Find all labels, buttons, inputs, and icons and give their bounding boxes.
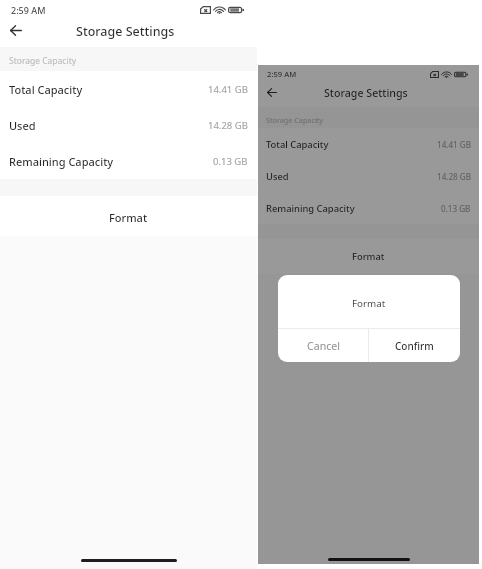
staticText: 0.13 GB: [213, 155, 248, 168]
staticText: Total Capacity: [9, 82, 83, 97]
staticText: 0.13 GB: [441, 203, 471, 214]
staticText: Remaining Capacity: [9, 154, 114, 169]
staticText: 14.28 GB: [208, 119, 248, 132]
button[interactable]: Cancel: [278, 329, 368, 362]
staticText: 14.41 GB: [437, 139, 471, 150]
staticText: Cancel: [307, 339, 340, 353]
staticText: Storage Settings: [324, 86, 408, 101]
button[interactable]: Total Capacity: [0, 71, 257, 107]
staticText: Confirm: [395, 339, 434, 353]
button[interactable]: Remaining Capacity: [0, 143, 257, 179]
button[interactable]: Total Capacity: [258, 128, 479, 160]
staticText: Format: [352, 250, 385, 263]
staticText: 2:59 AM: [267, 69, 297, 79]
button[interactable]: Back: [260, 85, 284, 100]
staticText: Format: [109, 210, 148, 225]
button[interactable]: Used: [0, 107, 257, 143]
button[interactable]: Used: [258, 160, 479, 192]
staticText: Remaining Capacity: [266, 202, 355, 215]
button[interactable]: Remaining Capacity: [258, 192, 479, 224]
staticText: Storage Capacity: [9, 55, 77, 67]
staticText: Used: [266, 170, 289, 183]
button[interactable]: Format: [0, 196, 257, 236]
staticText: 14.41 GB: [208, 83, 248, 96]
button[interactable]: Confirm: [369, 329, 460, 362]
button[interactable]: Format: [258, 239, 479, 274]
staticText: 14.28 GB: [437, 171, 471, 182]
staticText: Used: [9, 118, 36, 133]
staticText: Storage Settings: [76, 23, 175, 40]
staticText: 2:59 AM: [11, 4, 46, 16]
staticText: Total Capacity: [266, 138, 329, 151]
staticText: Format: [352, 297, 386, 310]
staticText: Storage Capacity: [266, 115, 324, 125]
button[interactable]: Back: [2, 21, 30, 40]
